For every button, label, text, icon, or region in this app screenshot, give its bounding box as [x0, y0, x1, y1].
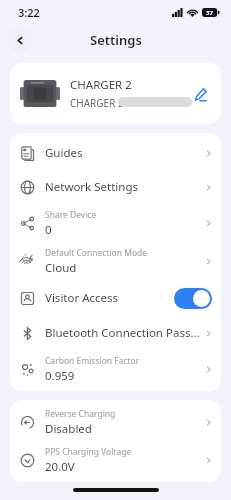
staticText: Reverse Charging	[45, 408, 116, 420]
button[interactable]: Bluetooth Connection Passwo...	[10, 316, 221, 350]
staticText: Network Settings	[45, 179, 139, 195]
staticText: PPS Charging Voltage	[45, 446, 132, 458]
button[interactable]: Visitor Access	[10, 280, 221, 316]
button[interactable]: Back	[8, 28, 32, 52]
staticText: Share Device	[45, 209, 97, 221]
staticText: 37	[206, 9, 213, 17]
staticText: 3:22	[18, 5, 40, 20]
staticText: Default Connection Mode	[45, 247, 148, 259]
button[interactable]: Network Settings	[10, 170, 221, 204]
button[interactable]: PPS Charging Voltage	[10, 441, 221, 479]
button[interactable]: Edit name	[189, 83, 211, 105]
staticText: CHARGER 2	[70, 77, 132, 93]
button[interactable]: Default Connection Mode	[10, 242, 221, 280]
button[interactable]: Share Device	[10, 204, 221, 242]
staticText: Disabled	[45, 421, 92, 437]
staticText: Bluetooth Connection Passwo...	[45, 325, 201, 341]
staticText: Guides	[45, 145, 83, 161]
staticText: 0.959	[45, 368, 75, 384]
staticText: 0	[45, 222, 52, 238]
button[interactable]: Guides	[10, 136, 221, 170]
staticText: Carbon Emission Factor	[45, 355, 140, 367]
staticText: Visitor Access	[45, 290, 174, 306]
staticText: Settings	[90, 31, 142, 49]
button[interactable]: Visitor Access toggle, on	[174, 288, 212, 309]
button[interactable]: CHARGER 2	[10, 63, 221, 124]
button[interactable]: Carbon Emission Factor	[10, 350, 221, 388]
staticText: Cloud	[45, 260, 77, 276]
staticText: CHARGER 2	[70, 96, 124, 110]
button[interactable]: Reverse Charging	[10, 403, 221, 441]
staticText: 20.0V	[45, 459, 75, 475]
